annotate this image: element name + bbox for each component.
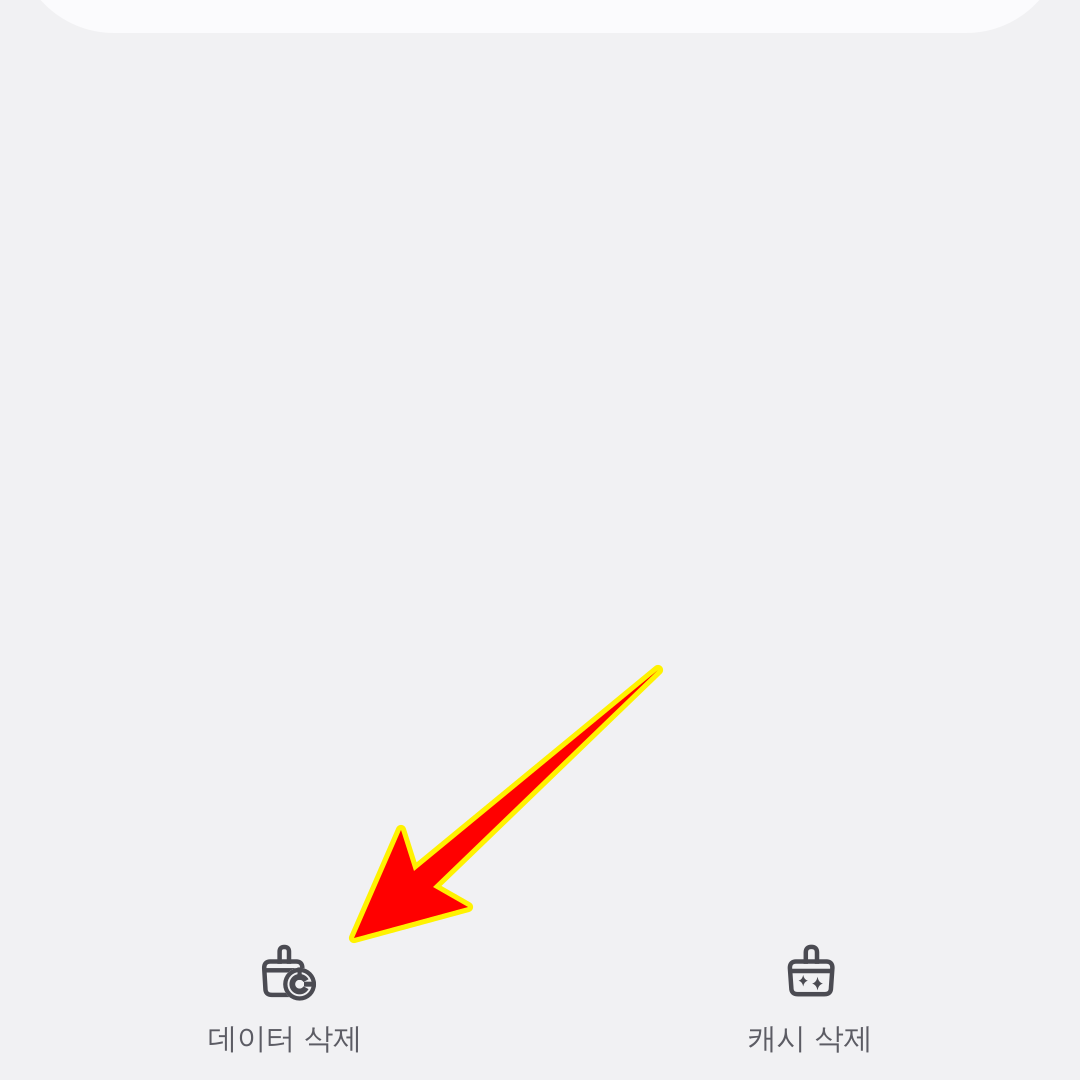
- button[interactable]: 데이터 삭제: [140, 941, 430, 1061]
- staticText: 데이터 삭제: [208, 1020, 362, 1056]
- button[interactable]: 캐시 삭제: [665, 941, 955, 1061]
- staticText: 캐시 삭제: [747, 1020, 872, 1056]
